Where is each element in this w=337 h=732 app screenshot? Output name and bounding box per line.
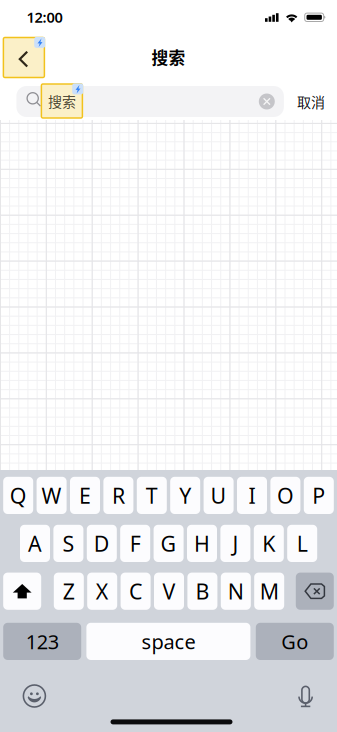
staticText: F (130, 529, 141, 557)
button[interactable]: C (121, 573, 151, 610)
button[interactable]: O (270, 477, 300, 514)
button[interactable]: E (70, 477, 100, 514)
button[interactable]: G (154, 525, 184, 562)
staticText: D (94, 529, 110, 557)
button[interactable]: 取消 (290, 86, 332, 117)
staticText: H (194, 529, 210, 557)
staticText: I (248, 481, 255, 509)
staticText: L (297, 529, 308, 557)
button[interactable]: Back (3, 37, 44, 77)
staticText: V (162, 577, 175, 605)
button[interactable]: Z (54, 573, 84, 610)
staticText: 123 (26, 628, 59, 655)
button[interactable]: D (87, 525, 117, 562)
staticText: 12:00 (26, 7, 62, 27)
button[interactable]: R (103, 477, 133, 514)
button[interactable]: space (86, 623, 250, 660)
button[interactable]: 搜索 (41, 84, 82, 118)
staticText: M (260, 577, 279, 605)
staticText: P (312, 481, 325, 509)
staticText: W (42, 481, 62, 509)
button[interactable]: V (154, 573, 184, 610)
button[interactable]: Emoji keyboard (23, 685, 45, 707)
staticText: E (79, 481, 91, 509)
button[interactable]: A (20, 525, 50, 562)
button[interactable]: Shift (3, 573, 41, 610)
staticText: C (129, 577, 142, 605)
staticText: Go (281, 628, 308, 655)
button[interactable]: W (37, 477, 67, 514)
staticText: S (62, 529, 74, 557)
button[interactable]: M (254, 573, 284, 610)
staticText: Z (63, 577, 75, 605)
button[interactable]: N (221, 573, 251, 610)
staticText: X (96, 577, 109, 605)
staticText: Y (179, 481, 191, 509)
button[interactable]: 123 (3, 623, 81, 660)
button[interactable]: Delete (296, 573, 334, 610)
button[interactable]: L (287, 525, 317, 562)
button[interactable]: S (53, 525, 83, 562)
button[interactable]: K (254, 525, 284, 562)
button[interactable]: Go (256, 623, 334, 660)
button[interactable]: H (187, 525, 217, 562)
button[interactable]: B (187, 573, 217, 610)
button[interactable]: F (120, 525, 150, 562)
staticText: B (195, 577, 209, 605)
staticText: Q (10, 481, 27, 509)
staticText: O (277, 481, 294, 509)
staticText: 搜索 (48, 91, 76, 111)
staticText: A (28, 529, 42, 557)
staticText: 取消 (297, 91, 325, 112)
staticText: J (232, 529, 238, 557)
button[interactable]: Clear text (259, 93, 275, 109)
button[interactable]: U (204, 477, 234, 514)
button[interactable]: P (304, 477, 334, 514)
staticText: space (141, 628, 195, 655)
staticText: U (211, 481, 227, 509)
button[interactable]: Dictate (298, 686, 313, 707)
button[interactable]: Y (170, 477, 200, 514)
button[interactable]: J (220, 525, 250, 562)
staticText: R (112, 481, 125, 509)
button[interactable]: T (137, 477, 167, 514)
staticText: G (161, 529, 177, 557)
staticText: T (146, 481, 158, 509)
staticText: N (228, 577, 244, 605)
button[interactable]: X (87, 573, 117, 610)
button[interactable]: Q (3, 477, 33, 514)
button[interactable]: I (237, 477, 267, 514)
staticText: K (262, 529, 275, 557)
staticText: 搜索 (151, 45, 185, 69)
